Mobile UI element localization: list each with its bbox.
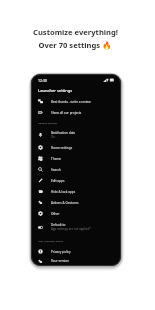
staticText: Your Launcher Status	[38, 239, 63, 242]
staticText: Actions & Gestures	[51, 201, 79, 205]
staticText: Customize everything!	[33, 27, 118, 37]
button[interactable]: Best thanks - write a review	[32, 96, 120, 107]
staticText: Search	[51, 168, 61, 172]
button[interactable]: Show all our projects	[32, 107, 120, 118]
staticText: Default to	[51, 223, 66, 227]
button[interactable]: Hide & lock apps	[32, 186, 120, 197]
staticText: Best thanks - write a review	[51, 100, 91, 104]
button[interactable]: Theme	[32, 153, 120, 164]
staticText: Edit apps	[51, 179, 65, 183]
button[interactable]: Notification dots	[32, 127, 120, 142]
staticText: Other	[51, 212, 60, 216]
button[interactable]: Privacy policy	[32, 246, 120, 257]
button[interactable]: Edit apps	[32, 175, 120, 186]
button[interactable]: Other	[32, 208, 120, 219]
button[interactable]: Home settings	[32, 142, 120, 153]
button[interactable]: Actions & Gestures	[32, 197, 120, 208]
staticText: Hide & lock apps	[51, 190, 76, 194]
staticText: 12:30	[38, 78, 47, 83]
staticText: Home settings	[51, 146, 73, 150]
staticText: Show all our projects	[51, 111, 82, 115]
button[interactable]: Default to	[32, 219, 120, 235]
staticText: Privacy policy	[51, 250, 71, 254]
staticText: On	[51, 135, 56, 139]
staticText: Your version	[51, 259, 70, 263]
button[interactable]: Your version	[32, 257, 120, 265]
staticText: Notification dots	[51, 131, 76, 135]
staticText: General settings	[38, 121, 58, 124]
staticText: Theme	[51, 157, 62, 161]
staticText: App settings are not applied*	[51, 227, 91, 231]
button[interactable]: Search	[32, 164, 120, 175]
staticText: Launcher settings	[38, 88, 73, 93]
staticText: Over 70 settings 🔥	[38, 40, 112, 50]
